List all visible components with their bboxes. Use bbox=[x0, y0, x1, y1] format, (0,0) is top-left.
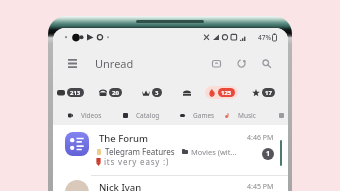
staticText: 213 bbox=[70, 89, 81, 97]
button[interactable]: Nick Ivan bbox=[53, 176, 288, 191]
button[interactable]: 17 bbox=[249, 86, 278, 99]
staticText: Telegram Features bbox=[105, 146, 175, 157]
staticText: its very easy :) bbox=[104, 156, 170, 167]
staticText: 17 bbox=[265, 89, 272, 97]
staticText: Movies (wit... bbox=[191, 147, 237, 157]
button[interactable]: 3 bbox=[139, 86, 165, 99]
button[interactable]: Menu bbox=[62, 53, 82, 73]
staticText: 125 bbox=[221, 89, 232, 97]
button[interactable] bbox=[180, 87, 194, 99]
staticText: 47% bbox=[258, 33, 271, 42]
staticText: Videos bbox=[81, 111, 102, 120]
staticText: Unread bbox=[95, 56, 134, 71]
button[interactable] bbox=[278, 112, 285, 119]
staticText: 3 bbox=[155, 89, 159, 97]
staticText: The Forum bbox=[99, 132, 149, 145]
staticText: 20 bbox=[112, 89, 119, 97]
button[interactable]: Refresh bbox=[231, 53, 251, 73]
staticText: Nick Ivan bbox=[99, 181, 142, 191]
button[interactable]: 213 bbox=[54, 86, 87, 99]
button[interactable]: Catalog bbox=[122, 110, 161, 121]
button[interactable]: 125 bbox=[205, 86, 238, 99]
button[interactable]: Search bbox=[256, 53, 276, 73]
staticText: 4:46 PM bbox=[247, 133, 274, 143]
staticText: Games bbox=[193, 111, 215, 120]
staticText: Catalog bbox=[136, 111, 160, 120]
button[interactable]: Music bbox=[224, 110, 257, 121]
staticText: Music bbox=[238, 111, 256, 120]
button[interactable]: The Forum bbox=[53, 125, 288, 175]
staticText: 4:45 PM bbox=[247, 182, 274, 191]
button[interactable]: Archive bbox=[206, 53, 226, 73]
staticText: 1 bbox=[266, 149, 271, 159]
button[interactable]: Games bbox=[179, 110, 216, 121]
button[interactable]: Videos bbox=[67, 110, 103, 121]
button[interactable]: 20 bbox=[96, 86, 125, 99]
